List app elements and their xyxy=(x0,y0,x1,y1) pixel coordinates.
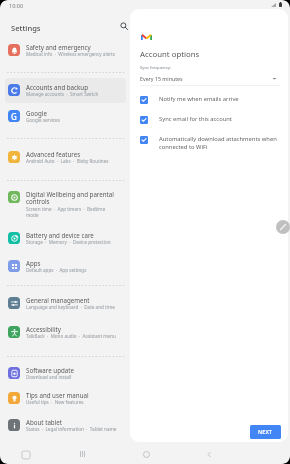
staticText: Settings xyxy=(11,23,41,33)
button[interactable]: Every 15 minutes xyxy=(140,75,277,82)
staticText: Tips and user manual xyxy=(26,391,89,399)
staticText: connected to WiFi xyxy=(159,143,208,151)
button[interactable]: Home xyxy=(138,446,154,462)
staticText: Screen time · App timers · Bedtime mode xyxy=(26,206,118,218)
staticText: Manage accounts · Smart Switch xyxy=(26,91,99,97)
button[interactable]: Notify me when emails arrive xyxy=(140,94,288,104)
staticText: Accessibility xyxy=(26,325,61,333)
staticText: Google services xyxy=(26,117,60,123)
button[interactable]: Search xyxy=(116,18,132,34)
button[interactable]: General management xyxy=(5,291,126,316)
staticText: G xyxy=(11,111,17,122)
button[interactable]: Advanced features xyxy=(5,145,126,170)
button[interactable]: Software update xyxy=(5,361,126,386)
button[interactable]: G xyxy=(5,104,126,129)
staticText: Android Auto · Labs · Bixby Routines xyxy=(26,158,109,164)
staticText: Sync email for this account xyxy=(159,115,232,123)
staticText: Status · Legal information · Tablet name xyxy=(26,426,117,432)
staticText: 10:00 xyxy=(9,2,24,9)
staticText: Software update xyxy=(26,366,74,374)
staticText: Language and keyboard · Date and time xyxy=(26,304,115,310)
staticText: About tablet xyxy=(26,418,62,426)
staticText: Sync frequency: xyxy=(140,65,171,71)
staticText: Safety and emergency xyxy=(26,43,91,51)
staticText: Advanced features xyxy=(26,150,81,158)
staticText: Useful tips · New features xyxy=(26,399,84,405)
button[interactable]: Battery and device care xyxy=(5,226,126,251)
staticText: Default apps · App settings xyxy=(26,267,87,273)
button[interactable]: Sync email for this account xyxy=(140,114,288,124)
staticText: Medical info · Wireless emergency alerts xyxy=(26,51,115,57)
button[interactable]: Back xyxy=(201,446,217,462)
button[interactable]: Digital Wellbeing and parental controls xyxy=(5,185,126,224)
button[interactable]: Apps xyxy=(5,254,126,279)
staticText: Accounts and backup xyxy=(26,83,88,91)
button[interactable]: Resize panes xyxy=(276,220,290,234)
staticText: Download and install xyxy=(26,374,72,380)
staticText: Battery and device care xyxy=(26,231,94,239)
button[interactable]: Accounts and backup xyxy=(5,78,126,103)
button[interactable]: About tablet xyxy=(5,413,126,438)
staticText: Account options xyxy=(140,49,200,60)
button[interactable]: Screenshot xyxy=(18,447,34,463)
staticText: Google xyxy=(26,109,47,117)
staticText: Automatically download attachments when xyxy=(159,135,277,143)
button[interactable]: Automatically download attachments when xyxy=(140,134,288,152)
button[interactable]: NEXT xyxy=(250,425,281,439)
staticText: Storage · Memory · Device protection xyxy=(26,239,111,245)
staticText: Every 15 minutes xyxy=(140,75,183,82)
button[interactable]: Tips and user manual xyxy=(5,386,126,411)
staticText: TalkBack · Mono audio · Assistant menu xyxy=(26,333,116,339)
staticText: General management xyxy=(26,296,90,304)
staticText: Digital Wellbeing and parental controls xyxy=(26,190,118,206)
button[interactable]: Accessibility xyxy=(5,320,126,345)
staticText: Notify me when emails arrive xyxy=(159,95,239,103)
staticText: NEXT xyxy=(258,428,273,436)
button[interactable]: Recents xyxy=(74,446,90,462)
staticText: Apps xyxy=(26,259,41,267)
button[interactable]: Safety and emergency xyxy=(5,38,126,63)
